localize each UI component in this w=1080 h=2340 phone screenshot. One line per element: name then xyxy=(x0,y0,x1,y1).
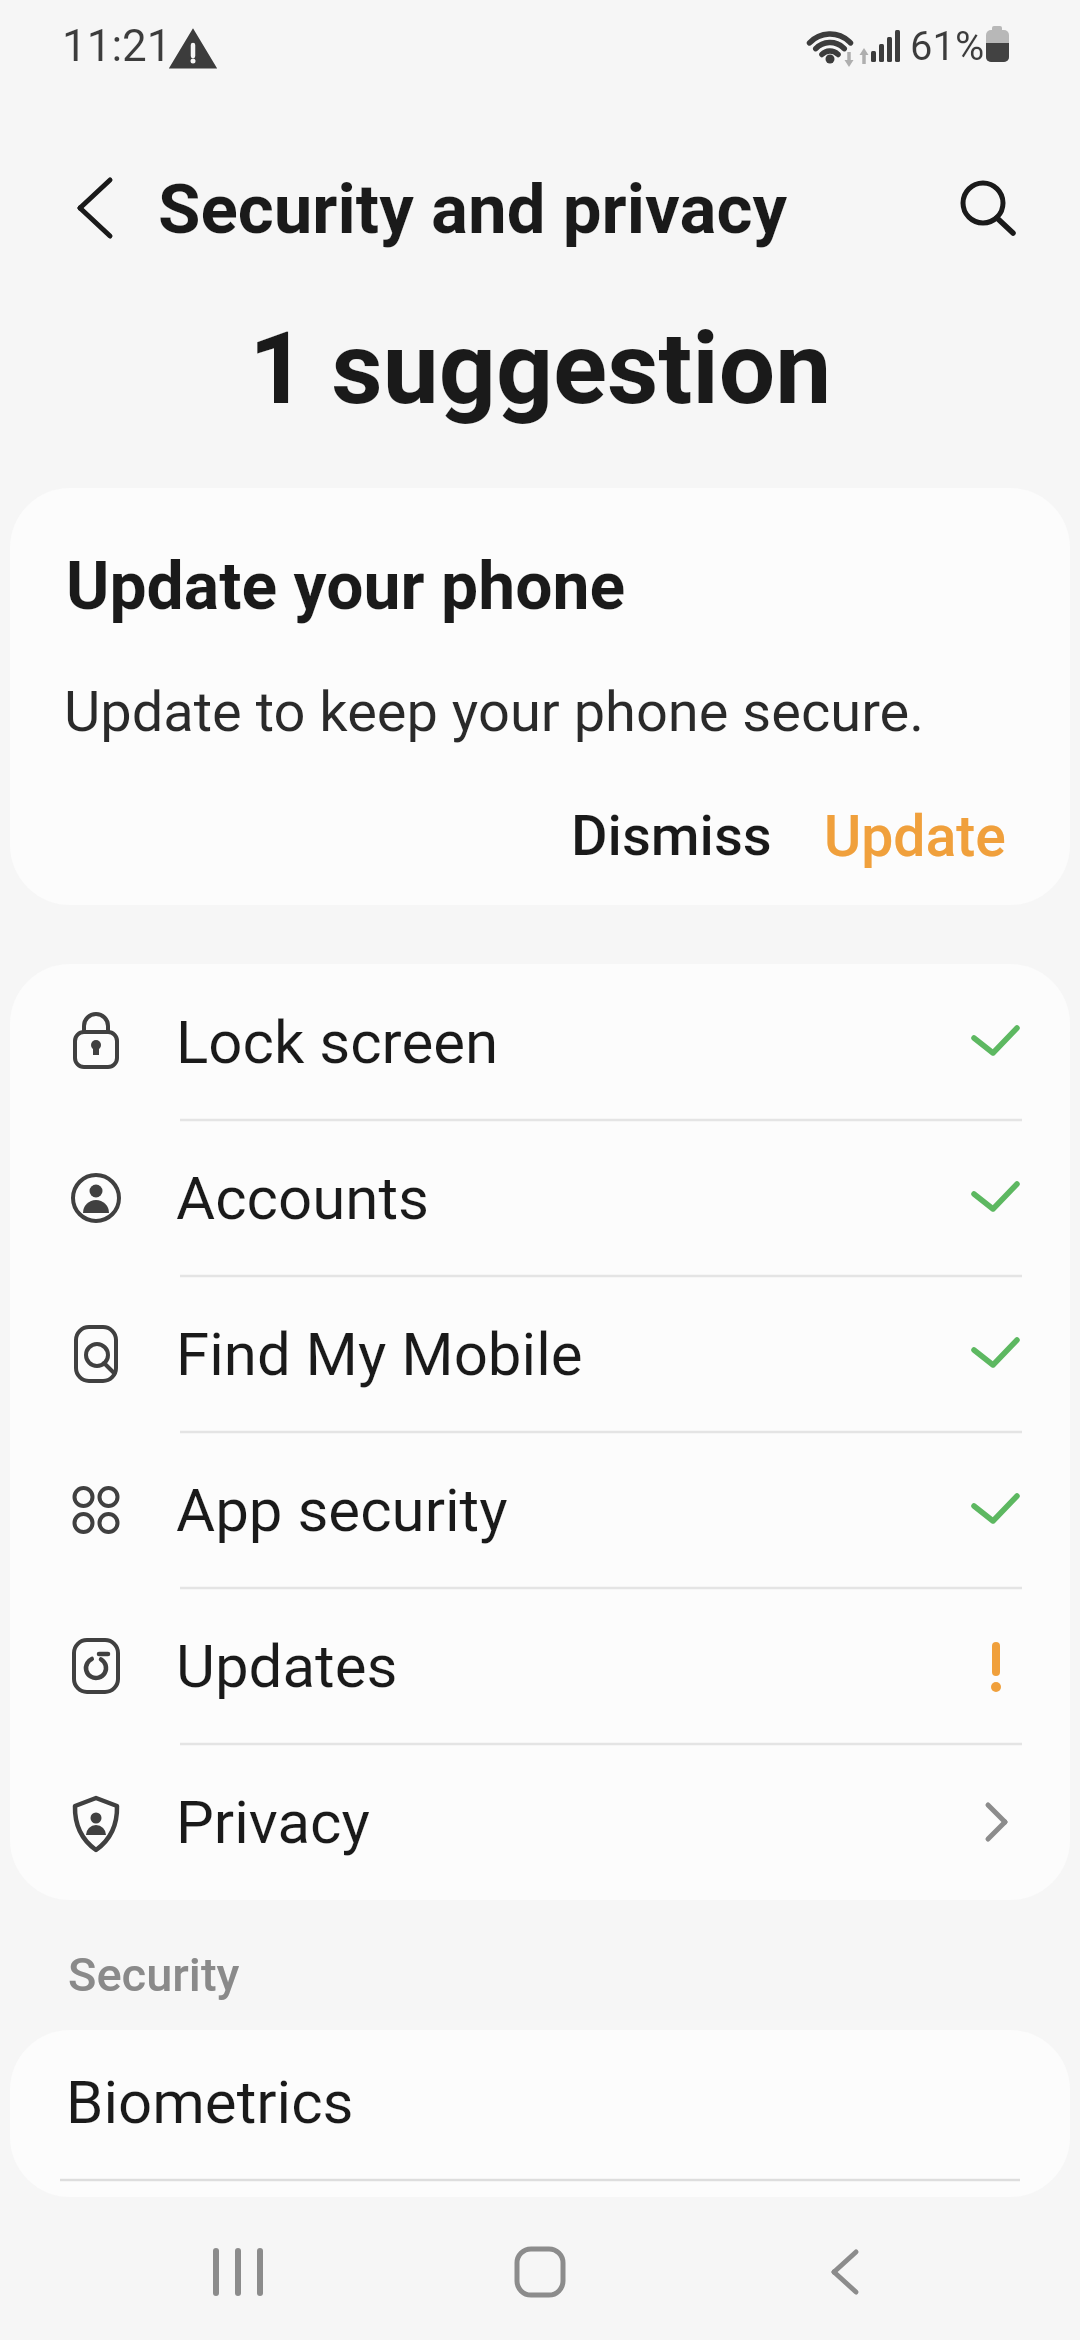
staticText: Find My Mobile xyxy=(176,1319,583,1389)
staticText: Security and privacy xyxy=(158,169,788,250)
button[interactable] xyxy=(10,1588,1070,1744)
button[interactable] xyxy=(10,1120,1070,1276)
staticText: Dismiss xyxy=(571,803,772,869)
staticText: Biometrics xyxy=(66,2067,354,2137)
staticText: Updates xyxy=(176,1631,398,1701)
staticText: Security xyxy=(68,1947,240,2002)
staticText: App security xyxy=(176,1475,508,1545)
button[interactable] xyxy=(555,794,790,880)
staticText: Lock screen xyxy=(176,1007,499,1077)
staticText: Update xyxy=(824,803,1006,870)
button[interactable] xyxy=(464,2212,616,2332)
button[interactable] xyxy=(10,1432,1070,1588)
button[interactable] xyxy=(945,167,1025,247)
button[interactable] xyxy=(48,168,128,248)
button[interactable] xyxy=(162,2212,314,2332)
staticText: 61% xyxy=(910,23,985,70)
button[interactable] xyxy=(10,2030,1070,2180)
staticText: Update your phone xyxy=(66,548,626,625)
button[interactable] xyxy=(10,1744,1070,1900)
staticText: Privacy xyxy=(176,1787,370,1857)
button[interactable] xyxy=(769,2212,921,2332)
staticText: Update to keep your phone secure. xyxy=(64,679,925,745)
staticText: 11:21 xyxy=(62,20,172,72)
button[interactable] xyxy=(810,794,1025,880)
staticText: Accounts xyxy=(176,1163,429,1233)
staticText: 1 suggestion xyxy=(249,310,832,427)
button[interactable] xyxy=(10,1276,1070,1432)
button[interactable] xyxy=(10,964,1070,1120)
